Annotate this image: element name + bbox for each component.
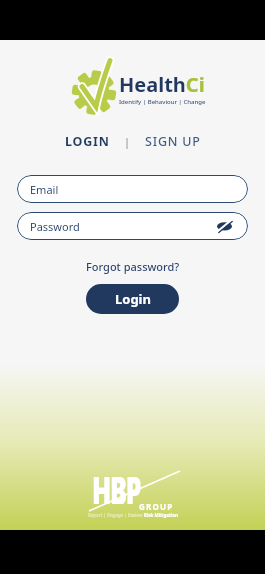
staticText: Risk Mitigation [144, 512, 178, 518]
button[interactable]: LOGIN [65, 133, 110, 150]
staticText: HealthCi [119, 71, 205, 98]
button[interactable]: Email [17, 175, 248, 203]
staticText: Identify | Behaviour | Change [119, 98, 206, 106]
staticText: SIGN UP [145, 133, 201, 150]
staticText: Email [30, 182, 59, 197]
staticText: Forgot password? [86, 259, 180, 274]
staticText: Login [115, 290, 151, 308]
button[interactable]: Forgot password? [86, 259, 180, 274]
button[interactable]: Login [86, 284, 179, 314]
button[interactable]: Password [17, 212, 248, 240]
staticText: HBP [92, 463, 141, 504]
staticText: LOGIN [65, 133, 110, 150]
button[interactable]: SIGN UP [145, 133, 201, 150]
staticText: Password [30, 219, 80, 234]
staticText: GROUP [139, 501, 174, 512]
staticText: Report | Engage | Review [88, 512, 144, 518]
staticText: | [124, 134, 131, 149]
